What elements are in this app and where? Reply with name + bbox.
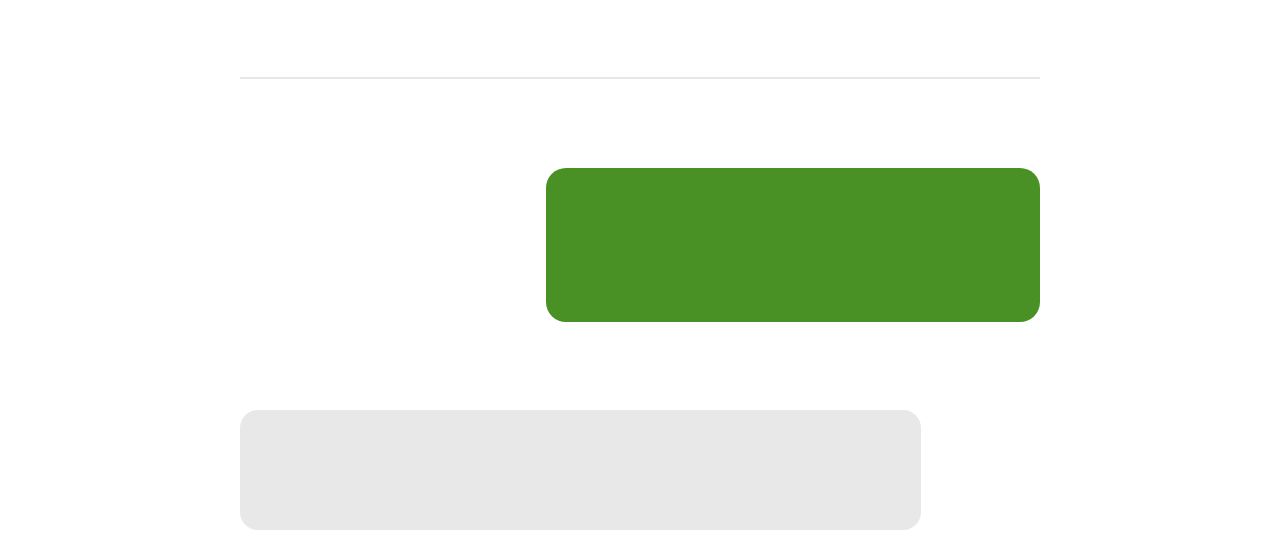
button[interactable]: Sent message <box>546 168 1040 322</box>
